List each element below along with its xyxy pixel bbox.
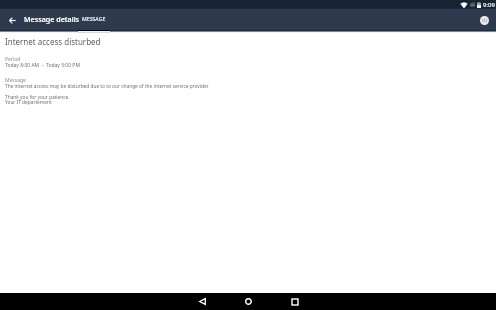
staticText: 9:09 (483, 1, 495, 9)
staticText: Internet access disturbed (5, 36, 101, 47)
staticText: Message details (24, 14, 80, 24)
staticText: The internet access may be disturbed due… (5, 83, 209, 90)
staticText: Message (5, 77, 26, 84)
staticText: MESSAGE (82, 15, 106, 22)
staticText: Today 8:00 AM - Today 5:00 PM (5, 62, 80, 69)
staticText: Your IT departement (5, 99, 52, 106)
button[interactable]: Back (196, 295, 209, 308)
button[interactable]: Back (4, 12, 21, 29)
button[interactable]: Account (477, 13, 491, 27)
button[interactable]: Recent apps (288, 295, 301, 308)
button[interactable]: Home (242, 295, 255, 308)
button[interactable]: MESSAGE (78, 9, 110, 30)
staticText: Period (5, 56, 21, 63)
staticText: Thank you for your patience. (5, 94, 70, 101)
